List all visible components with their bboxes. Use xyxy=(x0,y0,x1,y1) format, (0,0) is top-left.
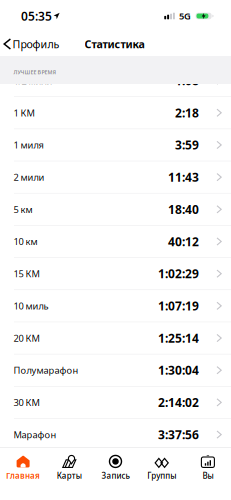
staticText: 1:25:14 xyxy=(158,330,199,346)
button[interactable]: Марафон xyxy=(0,419,231,451)
button[interactable]: Группы xyxy=(139,446,185,500)
staticText: 1/2 мили xyxy=(13,74,52,87)
button[interactable]: 20 КМ xyxy=(0,322,231,354)
staticText: 18:40 xyxy=(168,201,199,217)
staticText: Профиль xyxy=(12,37,59,51)
button[interactable]: Полумарафон xyxy=(0,354,231,387)
staticText: 20 КМ xyxy=(13,332,39,344)
button[interactable]: Вы xyxy=(185,446,231,500)
button[interactable]: Профиль xyxy=(0,33,59,55)
button[interactable]: 1/2 мили xyxy=(0,65,231,97)
staticText: 11:43 xyxy=(168,169,199,185)
staticText: Группы xyxy=(147,470,176,481)
staticText: 30 КМ xyxy=(13,396,39,409)
staticText: 10 км xyxy=(13,235,37,248)
button[interactable]: Запись xyxy=(92,446,139,500)
staticText: 15 КМ xyxy=(13,267,39,280)
staticText: 1 миля xyxy=(13,139,43,151)
button[interactable]: 1 миля xyxy=(0,129,231,161)
button[interactable]: Главная xyxy=(0,446,46,500)
button[interactable]: 2 мили xyxy=(0,161,231,193)
button[interactable]: 10 миль xyxy=(0,290,231,322)
staticText: 40:12 xyxy=(168,233,199,249)
staticText: Марафон xyxy=(13,428,56,441)
staticText: Запись xyxy=(101,470,129,481)
staticText: Главная xyxy=(6,470,40,481)
staticText: Карты xyxy=(57,470,82,481)
staticText: 2 мили xyxy=(13,171,44,183)
staticText: 3:59 xyxy=(175,137,199,153)
staticText: 3:37:56 xyxy=(158,427,199,442)
staticText: Статистика xyxy=(84,37,144,51)
staticText: 5 км xyxy=(13,203,32,215)
staticText: 2:18 xyxy=(175,105,199,121)
staticText: 05:35 xyxy=(21,8,52,24)
staticText: 1:02:29 xyxy=(158,266,199,282)
staticText: 1:08 xyxy=(175,73,199,88)
staticText: ЛУЧШЕЕ ВРЕМЯ xyxy=(14,69,57,76)
staticText: 5G xyxy=(179,10,191,22)
button[interactable]: 5 км xyxy=(0,193,231,226)
staticText: 2:14:02 xyxy=(158,394,199,410)
button[interactable]: 10 км xyxy=(0,226,231,258)
button[interactable]: 15 КМ xyxy=(0,258,231,290)
staticText: 1:30:04 xyxy=(158,362,199,378)
staticText: 1:07:19 xyxy=(158,298,199,314)
button[interactable]: Карты xyxy=(46,446,92,500)
button[interactable]: 1 КМ xyxy=(0,97,231,129)
staticText: 1 КМ xyxy=(13,107,34,119)
staticText: Полумарафон xyxy=(13,364,78,376)
button[interactable]: 30 КМ xyxy=(0,387,231,419)
staticText: 10 миль xyxy=(13,300,48,312)
staticText: Вы xyxy=(202,470,213,481)
